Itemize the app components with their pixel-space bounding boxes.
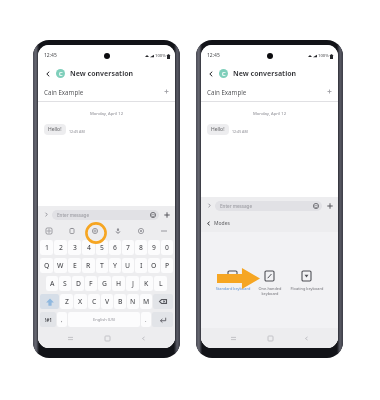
button[interactable]: Collapse keyboard	[157, 224, 171, 238]
button[interactable]: Floating keyboard	[288, 269, 325, 291]
staticText: 4	[87, 243, 91, 252]
button[interactable]: Enter message	[215, 201, 322, 211]
staticText: R	[86, 261, 91, 270]
button[interactable]: Back	[138, 333, 148, 343]
button[interactable]: L	[154, 276, 167, 291]
button[interactable]: Z	[60, 294, 73, 309]
button[interactable]: Emoji	[312, 202, 320, 210]
button[interactable]: Voice input	[111, 224, 125, 238]
button[interactable]: S	[59, 276, 71, 291]
button[interactable]: ,	[57, 312, 67, 327]
button[interactable]: Emoji	[149, 211, 157, 219]
button[interactable]: 9	[148, 240, 160, 255]
button[interactable]: Enter	[152, 312, 173, 327]
button[interactable]: 4	[82, 240, 95, 255]
button[interactable]: Backspace	[153, 294, 173, 309]
staticText: F	[89, 279, 93, 288]
staticText: C	[92, 297, 97, 306]
staticText: 8	[139, 243, 143, 252]
button[interactable]: V	[101, 294, 113, 309]
staticText: 7	[126, 243, 130, 252]
button[interactable]: Modes	[204, 214, 335, 232]
button[interactable]: I	[135, 258, 147, 273]
button[interactable]: Recents	[228, 333, 238, 343]
button[interactable]: T	[96, 258, 108, 273]
button[interactable]: Cain Example	[201, 81, 338, 102]
staticText: I	[140, 261, 143, 270]
button[interactable]: One-handed keyboard	[251, 269, 288, 296]
staticText: 100%	[155, 53, 166, 59]
staticText: Cain Example	[207, 88, 247, 96]
button[interactable]: B	[114, 294, 126, 309]
staticText: U	[125, 261, 131, 270]
button[interactable]: Enter message	[52, 210, 159, 220]
button[interactable]: E	[68, 258, 81, 273]
button[interactable]: 3	[68, 240, 81, 255]
button[interactable]: Home	[265, 333, 275, 343]
button[interactable]: R	[82, 258, 95, 273]
button[interactable]: Back	[205, 68, 217, 80]
button[interactable]: H	[112, 276, 125, 291]
button[interactable]: Expand toolbar	[42, 210, 51, 219]
button[interactable]: !#1	[40, 312, 56, 327]
staticText: J	[132, 279, 134, 288]
button[interactable]: Home	[102, 333, 112, 343]
button[interactable]: Q	[40, 258, 53, 273]
staticText: O	[151, 261, 157, 270]
button[interactable]: Add attachment	[325, 201, 334, 210]
button[interactable]: N	[127, 294, 139, 309]
button[interactable]: X	[74, 294, 87, 309]
staticText: Standard keyboard	[215, 286, 251, 291]
staticText: P	[165, 261, 170, 270]
button[interactable]: O	[148, 258, 160, 273]
button[interactable]: Modes	[88, 224, 102, 238]
button[interactable]: G	[98, 276, 111, 291]
button[interactable]: Cain Example	[38, 81, 175, 102]
button[interactable]: Standard keyboard	[214, 269, 251, 291]
button[interactable]: F	[85, 276, 97, 291]
staticText: A	[50, 279, 55, 288]
staticText: Monday, April 12	[201, 111, 338, 117]
button[interactable]: C	[88, 294, 100, 309]
button[interactable]: Settings	[134, 224, 148, 238]
button[interactable]: A	[46, 276, 58, 291]
button[interactable]: U	[122, 258, 134, 273]
button[interactable]: D	[72, 276, 84, 291]
button[interactable]: J	[126, 276, 139, 291]
button[interactable]: Back	[42, 68, 54, 80]
button[interactable]: P	[161, 258, 173, 273]
staticText: E	[73, 261, 77, 270]
button[interactable]: 1	[40, 240, 53, 255]
staticText: G	[102, 279, 107, 288]
button[interactable]: 2	[54, 240, 67, 255]
button[interactable]: K	[140, 276, 153, 291]
button[interactable]: M	[140, 294, 152, 309]
staticText: 0	[165, 243, 169, 252]
staticText: One-handed keyboard	[252, 286, 288, 296]
staticText: 3	[73, 243, 77, 252]
staticText: C	[59, 70, 63, 77]
button[interactable]: Shift	[40, 294, 59, 309]
button[interactable]: 7	[122, 240, 134, 255]
button[interactable]: English (US)	[68, 312, 140, 327]
button[interactable]: 0	[161, 240, 173, 255]
staticText: English (US)	[93, 317, 116, 322]
staticText: New conversation	[70, 69, 134, 79]
staticText: Enter message	[57, 212, 90, 218]
staticText: 12:45	[207, 52, 220, 59]
button[interactable]: 5	[96, 240, 108, 255]
button[interactable]: W	[54, 258, 67, 273]
staticText: Cain Example	[44, 88, 84, 96]
button[interactable]: .	[141, 312, 151, 327]
staticText: !#1	[45, 317, 52, 323]
button[interactable]: 8	[135, 240, 147, 255]
button[interactable]: Expand toolbar	[205, 201, 214, 210]
button[interactable]: Recents	[65, 333, 75, 343]
button[interactable]: Back	[301, 333, 311, 343]
button[interactable]: Clipboard	[65, 224, 79, 238]
button[interactable]: Add attachment	[162, 210, 171, 219]
button[interactable]: Stickers	[42, 224, 56, 238]
button[interactable]: Y	[109, 258, 121, 273]
staticText: 1	[45, 243, 49, 252]
button[interactable]: 6	[109, 240, 121, 255]
